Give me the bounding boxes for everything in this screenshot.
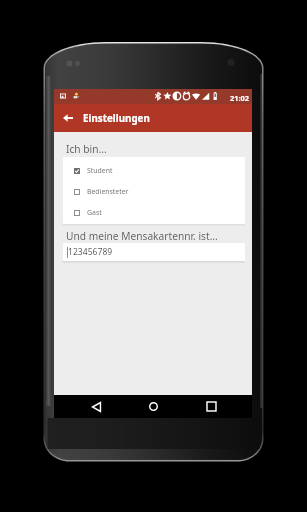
- staticText: Gast: [87, 208, 102, 217]
- button[interactable]: Home: [135, 395, 171, 418]
- button[interactable]: Back: [54, 104, 82, 132]
- staticText: Bediensteter: [87, 187, 129, 196]
- button[interactable]: Bediensteter: [63, 181, 245, 202]
- button[interactable]: Back: [78, 395, 114, 418]
- button[interactable]: Gast: [63, 202, 245, 223]
- staticText: Student: [87, 166, 113, 175]
- staticText: 123456789: [68, 246, 113, 258]
- staticText: Und meine Mensakartennr. ist...: [66, 229, 218, 243]
- button[interactable]: Student: [63, 160, 245, 181]
- staticText: Ich bin...: [66, 142, 107, 156]
- button[interactable]: 123456789: [63, 243, 245, 261]
- staticText: 21:02: [230, 93, 249, 103]
- button[interactable]: Recent apps: [193, 395, 229, 418]
- staticText: Einstellungen: [83, 112, 150, 125]
